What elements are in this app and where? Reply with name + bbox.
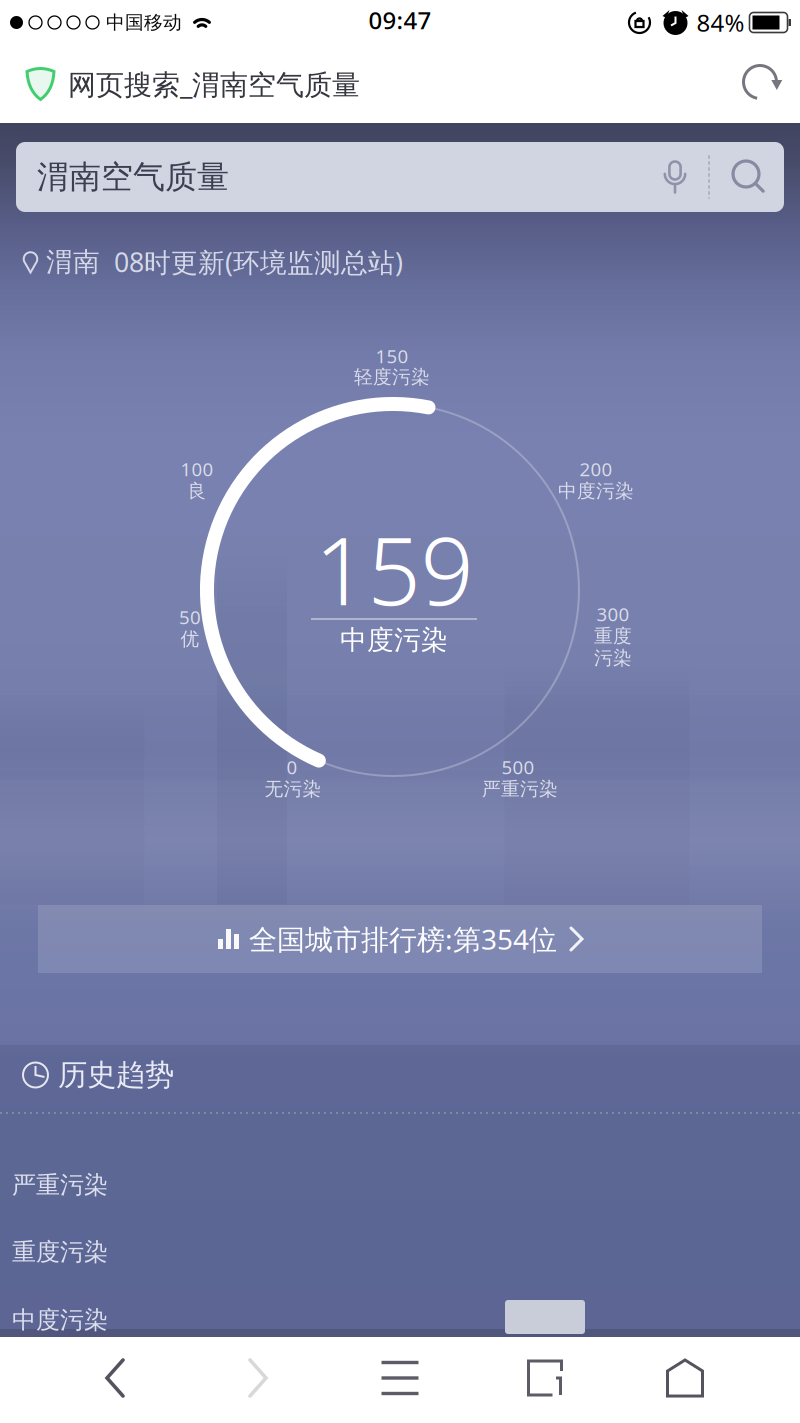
button[interactable]: Home xyxy=(650,1343,720,1413)
staticText: 0 xyxy=(286,755,297,779)
button[interactable]: 全国城市排行榜:第354位 xyxy=(38,905,762,973)
staticText: 中度污染 xyxy=(12,1305,108,1335)
button[interactable]: Reload xyxy=(738,60,782,104)
staticText: 159 xyxy=(314,507,473,631)
staticText: 轻度污染 xyxy=(354,365,430,388)
staticText: 中度污染 xyxy=(340,624,448,656)
button[interactable]: Back xyxy=(80,1343,150,1413)
staticText: 重度污染 xyxy=(12,1237,108,1267)
staticText: 中度污染 xyxy=(558,479,634,502)
staticText: 历史趋势 xyxy=(58,1057,174,1093)
staticText: 全国城市排行榜:第354位 xyxy=(249,920,557,958)
button[interactable]: Menu xyxy=(365,1343,435,1413)
button[interactable]: 渭南空气质量 xyxy=(16,142,784,212)
staticText: 渭南 xyxy=(46,246,100,278)
staticText: 84% xyxy=(696,7,744,38)
staticText: 200 xyxy=(579,457,612,481)
staticText: 重度 xyxy=(594,624,632,647)
staticText: 良 xyxy=(187,479,206,502)
staticText: 网页搜索_渭南空气质量 xyxy=(68,65,360,103)
staticText: 严重污染 xyxy=(482,777,558,800)
staticText: 优 xyxy=(180,627,199,650)
staticText: 150 xyxy=(375,344,408,368)
staticText: 08时更新(环境监测总站) xyxy=(114,244,403,280)
staticText: 中国移动 xyxy=(106,11,182,34)
button[interactable]: Tabs xyxy=(510,1343,580,1413)
button[interactable]: Forward xyxy=(223,1343,293,1413)
staticText: 严重污染 xyxy=(12,1170,108,1200)
staticText: 50 xyxy=(179,605,201,629)
staticText: 渭南空气质量 xyxy=(37,157,229,197)
staticText: 300 xyxy=(596,602,629,626)
staticText: 500 xyxy=(501,755,534,779)
staticText: 09:47 xyxy=(368,4,431,36)
staticText: 100 xyxy=(180,457,213,481)
staticText: 污染 xyxy=(594,646,632,669)
staticText: 无污染 xyxy=(264,777,321,800)
